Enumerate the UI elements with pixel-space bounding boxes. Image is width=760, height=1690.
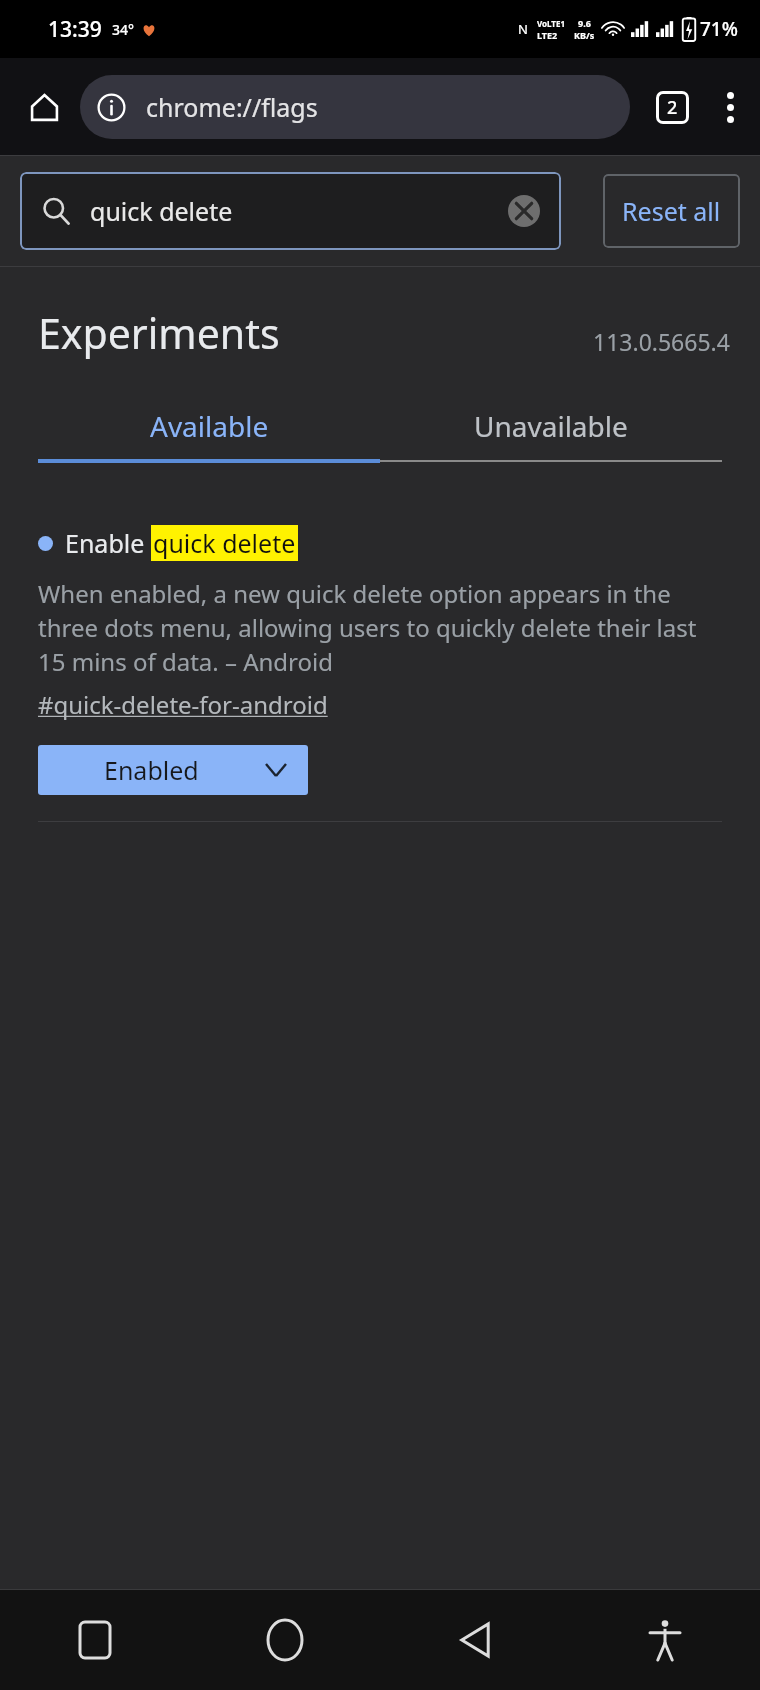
staticText: 13:39 [48, 15, 102, 44]
button[interactable]: chrome://flags [80, 75, 630, 139]
staticText: 113.0.5665.4 [593, 326, 730, 357]
staticText: Enabled [104, 753, 199, 787]
button[interactable]: Clear search [507, 194, 541, 228]
button[interactable]: Unavailable [380, 393, 722, 459]
staticText: 2 [667, 95, 678, 120]
staticText: Unavailable [474, 407, 628, 445]
staticText: Available [150, 407, 269, 445]
staticText: Enable [65, 526, 151, 560]
staticText: VoLTE1 [537, 18, 566, 29]
button[interactable]: Available [38, 393, 380, 459]
staticText: KB/s [574, 29, 595, 41]
staticText: 71% [700, 16, 738, 42]
staticText: quick delete [90, 194, 233, 228]
staticText: Reset all [622, 194, 721, 228]
staticText: When enabled, a new quick delete option … [38, 577, 722, 678]
staticText: chrome://flags [146, 90, 318, 124]
staticText: N [518, 20, 528, 38]
staticText: 9.6 [578, 17, 591, 29]
button[interactable]: Accessibility [570, 1590, 760, 1690]
button[interactable]: Enabled [38, 745, 308, 795]
button[interactable]: Reset all [603, 174, 740, 248]
staticText: quick delete [153, 526, 296, 560]
button[interactable]: Home [18, 81, 70, 133]
staticText: #quick-delete-for-android [38, 688, 328, 721]
button[interactable]: Back [380, 1590, 570, 1690]
staticText: Experiments [38, 305, 280, 361]
button[interactable]: Tabs: 2 [644, 79, 700, 135]
staticText: LTE2 [537, 29, 558, 41]
button[interactable]: #quick-delete-for-android [38, 688, 328, 721]
staticText: 34° [112, 20, 134, 39]
button[interactable]: Home [190, 1590, 380, 1690]
button[interactable]: More options [700, 77, 760, 137]
button[interactable]: Recent apps [0, 1590, 190, 1690]
button[interactable]: quick delete [20, 172, 561, 250]
